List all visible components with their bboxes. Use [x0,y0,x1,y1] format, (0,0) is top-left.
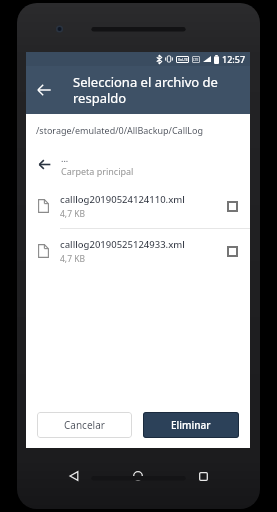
button[interactable]: Cancelar [37,412,132,438]
staticText: /storage/emulated/0/AllBackup/CallLog [36,124,203,136]
staticText: VoLTE [178,57,188,62]
button[interactable]: Recent apps [186,462,220,490]
button[interactable]: Home [121,462,155,490]
staticText: Eliminar [171,418,211,432]
staticText: Cancelar [64,418,105,432]
staticText: 4,7 KB [60,253,85,265]
staticText: 12:57 [222,53,246,65]
staticText: ... [61,152,69,164]
button[interactable]: Select calllog20190524124110.xml [227,201,238,212]
staticText: Carpeta principal [61,165,134,177]
staticText: Selecciona el archivo de respaldo [73,73,218,107]
button[interactable]: Select calllog20190525124933.xml [227,246,238,257]
button[interactable]: calllog20190525124933.xml [26,229,250,273]
button[interactable]: Back [57,462,91,490]
button[interactable]: ... [26,144,250,184]
button[interactable]: calllog20190524124110.xml [26,184,250,228]
staticText: LTE [193,58,199,62]
staticText: calllog20190524124110.xml [60,193,185,206]
button[interactable]: Eliminar [143,412,239,438]
button[interactable]: Back [26,66,62,114]
staticText: 4,7 KB [60,208,85,220]
staticText: calllog20190525124933.xml [60,238,185,251]
